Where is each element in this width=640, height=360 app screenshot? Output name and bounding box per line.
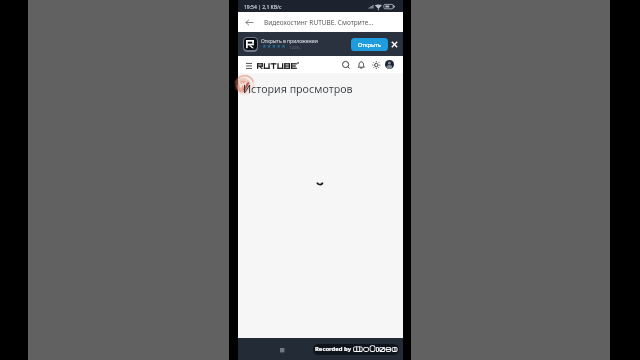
button[interactable]: Theme [370,59,382,71]
staticText: 1228+ [289,45,301,51]
button[interactable]: Открыть [351,38,388,51]
button[interactable]: Profile [385,60,394,69]
staticText: Открыть в приложении [261,38,318,45]
button[interactable]: Recent apps [276,344,287,355]
button[interactable]: Close banner [388,38,400,50]
staticText: Видеохостинг RUTUBE. Смотрите… [264,18,374,27]
staticText: История просмотров [243,82,353,97]
button[interactable]: Search [340,59,352,71]
staticText: Открыть [358,41,381,48]
button[interactable]: Back [243,16,256,29]
button[interactable]: Menu [243,59,255,71]
button[interactable]: Notifications [355,59,367,71]
staticText: 19:54 | 2,1 KB/c [244,4,282,11]
staticText: Recorded by [315,345,352,353]
